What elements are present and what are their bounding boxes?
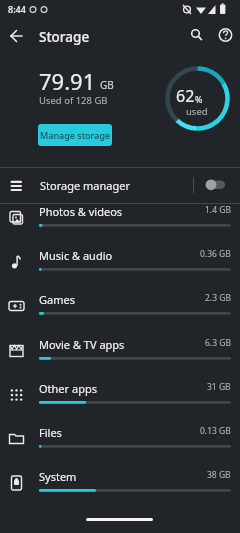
staticText: Music & audio (39, 248, 113, 263)
button[interactable]: Storage manager (0, 168, 240, 203)
button[interactable]: Music & audio (0, 234, 240, 277)
staticText: 79.91 (39, 66, 96, 96)
staticText: Files (39, 425, 62, 440)
staticText: 0.36 GB (200, 248, 231, 260)
button[interactable] (200, 172, 232, 198)
button[interactable]: Movie & TV apps (0, 323, 240, 366)
staticText: 0.13 GB (200, 425, 231, 437)
button[interactable]: Files (0, 411, 240, 454)
staticText: 2.3 GB (205, 292, 231, 304)
staticText: Games (39, 292, 75, 307)
button[interactable]: System (0, 455, 240, 498)
staticText: 6.3 GB (205, 337, 231, 349)
staticText: Manage storage (40, 129, 111, 141)
staticText: 31 GB (207, 381, 231, 393)
staticText: Storage manager (40, 178, 130, 193)
staticText: Photos & videos (39, 204, 123, 219)
button[interactable]: Manage storage (38, 124, 112, 146)
staticText: % (195, 93, 203, 105)
button[interactable]: Other apps (0, 367, 240, 410)
staticText: Storage (39, 28, 90, 46)
button[interactable]: Photos & videos (0, 190, 240, 233)
staticText: 62 (176, 85, 195, 107)
button[interactable]: Games (0, 278, 240, 321)
staticText: GB (100, 78, 114, 92)
staticText: 38 GB (207, 469, 231, 481)
button[interactable] (211, 18, 240, 54)
staticText: 8:44 (8, 3, 26, 15)
staticText: Other apps (39, 381, 97, 396)
button[interactable] (0, 18, 36, 54)
button[interactable] (182, 18, 211, 54)
staticText: 1.4 GB (205, 204, 231, 216)
staticText: System (39, 469, 77, 484)
staticText: Movie & TV apps (39, 337, 125, 352)
staticText: Used of 128 GB (39, 94, 108, 107)
staticText: used (186, 105, 208, 118)
